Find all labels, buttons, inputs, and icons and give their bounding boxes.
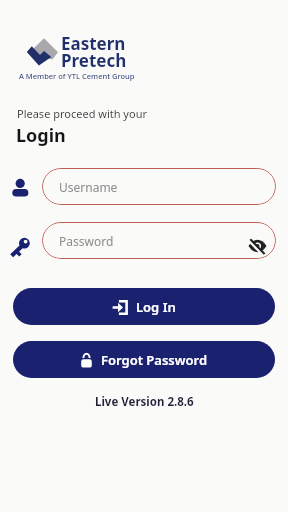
staticText: A Member of YTL Cement Group <box>19 71 135 81</box>
staticText: Login <box>16 123 66 148</box>
button[interactable]: Username <box>42 168 276 205</box>
button[interactable] <box>248 238 267 255</box>
button[interactable]: Log In <box>13 288 275 325</box>
staticText: Pretech <box>61 49 127 72</box>
staticText: Log In <box>136 298 176 316</box>
staticText: Forgot Password <box>101 351 208 369</box>
staticText: Live Version 2.8.6 <box>95 394 194 410</box>
staticText: Eastern <box>61 32 126 55</box>
button[interactable]: Password <box>42 222 276 259</box>
staticText: Password <box>59 233 114 249</box>
staticText: Username <box>59 179 118 195</box>
button[interactable]: Forgot Password <box>13 341 275 378</box>
staticText: Please proceed with your <box>17 106 147 121</box>
